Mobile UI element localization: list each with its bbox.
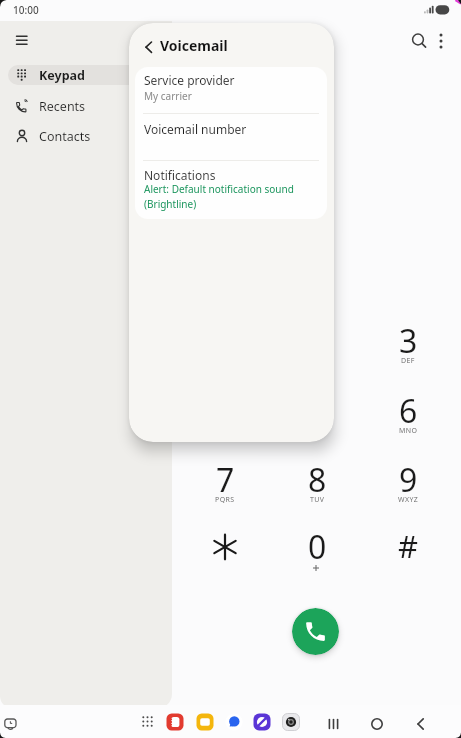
button[interactable]	[205, 527, 245, 567]
button[interactable]: Keypad	[8, 65, 168, 85]
staticText: 0	[308, 525, 327, 569]
staticText: Keypad	[39, 67, 85, 84]
button[interactable]: Service provider	[135, 67, 327, 113]
staticText: Alert: Default notification sound	[144, 182, 294, 196]
button[interactable]	[430, 28, 452, 54]
button[interactable]	[166, 713, 184, 731]
button[interactable]	[323, 710, 344, 732]
staticText: Recents	[39, 98, 86, 115]
staticText: (Brightline)	[144, 197, 197, 211]
staticText: Contacts	[39, 128, 91, 145]
button[interactable]	[137, 35, 161, 59]
button[interactable]	[292, 608, 339, 655]
staticText: 3	[399, 319, 418, 363]
button[interactable]	[282, 713, 300, 731]
button[interactable]	[196, 713, 214, 731]
staticText: #	[398, 525, 419, 567]
button[interactable]: #	[368, 521, 448, 571]
button[interactable]	[225, 713, 243, 731]
button[interactable]: 2	[277, 316, 357, 366]
staticText: MNO	[399, 426, 418, 436]
staticText: 7	[216, 458, 235, 502]
button[interactable]	[253, 713, 271, 731]
staticText: Voicemail number	[144, 121, 247, 137]
button[interactable]: 3	[368, 316, 448, 366]
button[interactable]: 6	[368, 386, 448, 436]
staticText: 9	[399, 458, 418, 502]
button[interactable]: 9	[368, 455, 448, 505]
button[interactable]: 5	[277, 386, 357, 436]
staticText: DEF	[401, 356, 415, 366]
staticText: 10:00	[13, 3, 39, 17]
button[interactable]: 8	[277, 455, 357, 505]
button[interactable]	[4, 710, 24, 732]
button[interactable]	[410, 710, 431, 732]
button[interactable]: Notifications	[135, 161, 327, 219]
button[interactable]: Voicemail number	[135, 114, 327, 160]
button[interactable]	[406, 28, 432, 54]
staticText: 6	[399, 389, 418, 433]
staticText: Voicemail	[160, 36, 228, 55]
button[interactable]	[366, 710, 388, 732]
button[interactable]: 7	[185, 455, 265, 505]
staticText: TUV	[310, 495, 325, 505]
button[interactable]	[12, 29, 36, 53]
staticText: Service provider	[144, 72, 235, 88]
staticText: Notifications	[144, 167, 216, 183]
button[interactable]: Contacts	[8, 125, 168, 147]
staticText: My carrier	[144, 89, 192, 103]
button[interactable]: 0	[277, 522, 357, 572]
staticText: 8	[308, 458, 327, 502]
button[interactable]: Recents	[8, 95, 168, 117]
button[interactable]	[138, 712, 157, 731]
staticText: PQRS	[215, 495, 235, 505]
staticText: WXYZ	[398, 495, 419, 505]
